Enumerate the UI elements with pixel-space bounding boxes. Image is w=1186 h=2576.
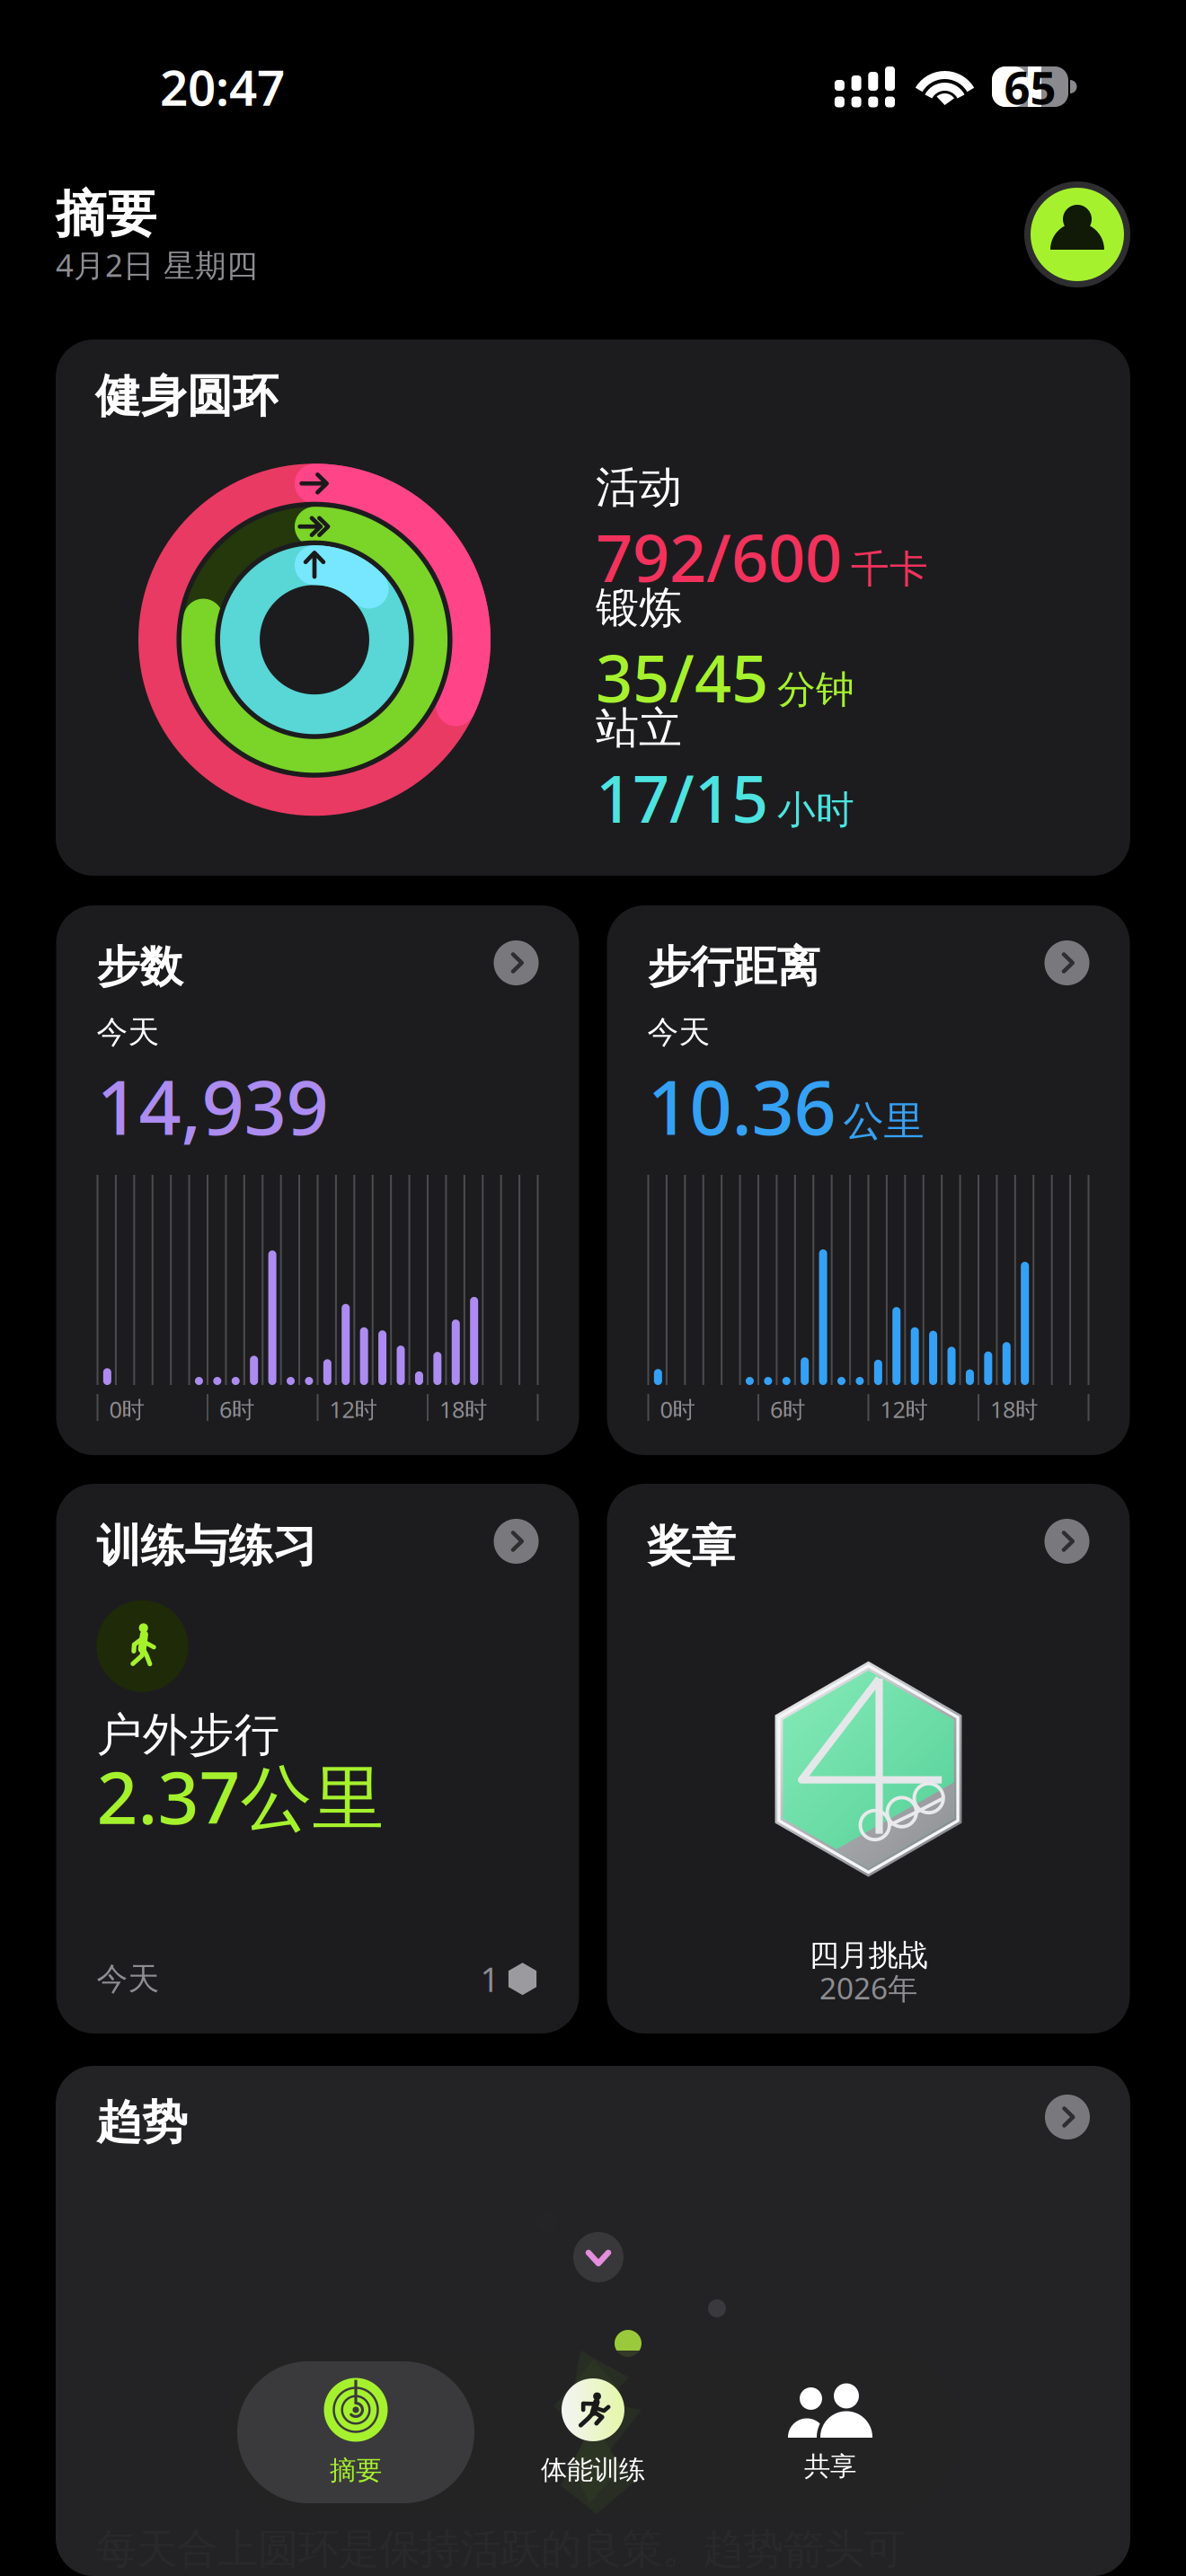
staticText: 792/600 (596, 514, 842, 600)
staticText: 18时 (439, 1394, 487, 1424)
button[interactable]: 体能训练 (474, 2361, 712, 2503)
button[interactable]: 步数 (56, 905, 579, 1455)
staticText: 奖章 (647, 1519, 735, 1573)
staticText: 共享 (804, 2450, 856, 2483)
staticText: 2.37公里 (97, 1748, 384, 1844)
button[interactable]: 趋势 (56, 2066, 1130, 2576)
staticText: 18时 (990, 1394, 1038, 1424)
staticText: 今天 (647, 1013, 710, 1051)
staticText: 0时 (109, 1394, 144, 1424)
staticText: 训练与练习 (97, 1519, 317, 1573)
staticText: 锻炼 (596, 581, 682, 634)
staticText: 趋势 (96, 2095, 188, 2150)
staticText: 摘要 (56, 183, 156, 245)
button[interactable]: 个人资料 (1024, 181, 1130, 287)
staticText: 6时 (770, 1394, 805, 1424)
staticText: 1 (480, 1957, 499, 2001)
staticText: 站立 (596, 702, 682, 755)
staticText: 四月挑战 (809, 1937, 928, 1974)
staticText: 14,939 (97, 1057, 328, 1155)
staticText: 65 (1004, 56, 1056, 117)
button[interactable]: 共享 (712, 2361, 949, 2503)
staticText: 步行距离 (647, 940, 820, 993)
staticText: 千卡 (851, 546, 928, 593)
button[interactable]: 摘要 (237, 2361, 474, 2503)
button[interactable]: 健身圆环 (56, 340, 1130, 876)
staticText: 35/45 (596, 634, 768, 720)
staticText: 步数 (97, 940, 183, 993)
staticText: 12时 (329, 1394, 377, 1424)
staticText: 10.36 (647, 1057, 836, 1155)
staticText: 4月2日 星期四 (56, 244, 258, 286)
staticText: 小时 (777, 786, 854, 834)
staticText: 分钟 (777, 666, 854, 713)
staticText: 公里 (843, 1096, 924, 1146)
staticText: 今天 (97, 1960, 159, 1998)
staticText: 摘要 (330, 2454, 382, 2487)
staticText: 今天 (97, 1013, 159, 1051)
button[interactable]: 奖章 (607, 1484, 1130, 2033)
staticText: 活动 (596, 461, 682, 514)
staticText: 体能训练 (541, 2454, 645, 2486)
button[interactable]: 步行距离 (607, 905, 1130, 1455)
staticText: 6时 (219, 1394, 254, 1424)
staticText: 12时 (880, 1394, 928, 1424)
staticText: 17/15 (596, 755, 768, 841)
staticText: 0时 (660, 1394, 695, 1424)
button[interactable]: 训练与练习 (56, 1484, 579, 2033)
staticText: 20:47 (160, 54, 285, 119)
staticText: 2026年 (819, 1968, 917, 2008)
staticText: 健身圆环 (95, 368, 279, 424)
staticText: 户外步行 (97, 1707, 280, 1763)
